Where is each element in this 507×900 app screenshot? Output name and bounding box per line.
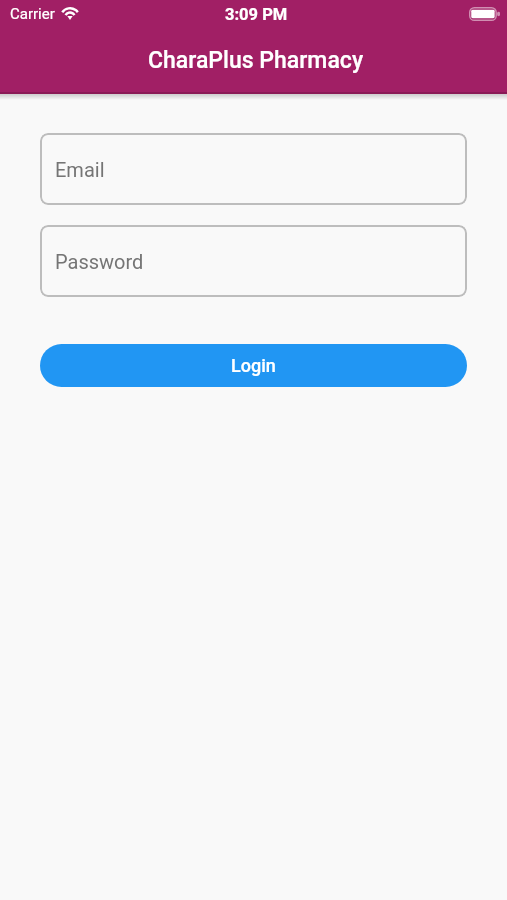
button[interactable]: Password: [40, 225, 467, 297]
staticText: 3:09 PM: [225, 5, 288, 24]
button[interactable]: Login: [40, 344, 467, 387]
staticText: Email: [55, 158, 105, 181]
staticText: Password: [55, 250, 144, 273]
other: Battery full: [469, 7, 500, 21]
button[interactable]: Email: [40, 133, 467, 205]
other: Wi-Fi signal: [61, 7, 79, 20]
staticText: Carrier: [10, 5, 55, 23]
staticText: Login: [231, 355, 276, 376]
staticText: CharaPlus Pharmacy: [4, 47, 507, 74]
